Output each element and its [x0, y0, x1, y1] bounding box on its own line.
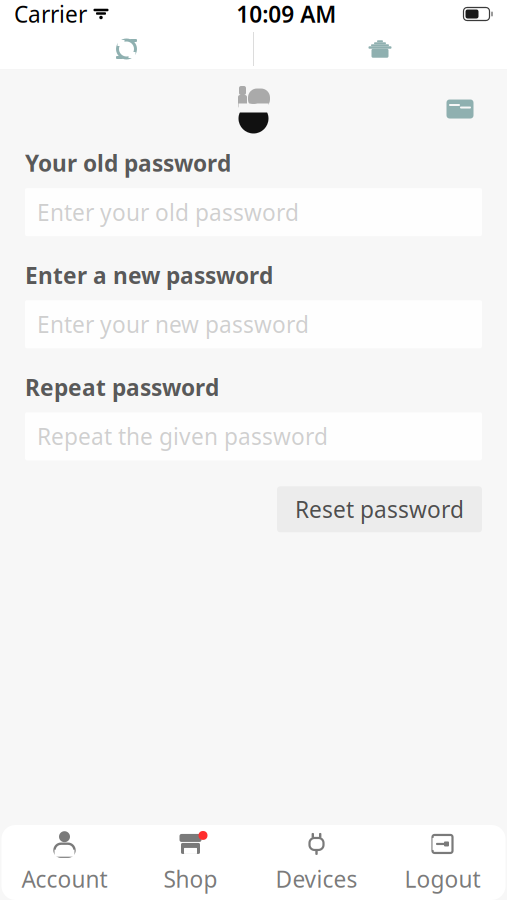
button[interactable]: Reset password [277, 486, 482, 532]
staticText: Devices [275, 864, 357, 894]
button[interactable]: Enter your new password [0, 300, 507, 348]
button[interactable]: Enter your old password [0, 188, 507, 236]
staticText: Reset password [295, 494, 464, 524]
button[interactable]: Account [1, 825, 127, 900]
staticText: Logout [404, 864, 480, 894]
button[interactable]: Home [253, 28, 507, 70]
button[interactable]: Messages [433, 82, 487, 136]
staticText: Repeat the given password [37, 421, 328, 451]
staticText: Carrier [14, 0, 87, 29]
button[interactable]: Repeat the given password [0, 412, 507, 460]
button[interactable]: Devices [253, 825, 379, 900]
staticText: Account [21, 864, 107, 894]
button[interactable]: Logout [379, 825, 505, 900]
staticText: Enter a new password [25, 260, 273, 290]
staticText: Shop [163, 864, 217, 894]
staticText: Repeat password [25, 372, 219, 402]
staticText: Enter your new password [37, 309, 309, 339]
button[interactable]: Refresh [0, 28, 253, 70]
staticText: 10:09 AM [236, 0, 336, 29]
staticText: Enter your old password [37, 197, 299, 227]
staticText: Your old password [25, 148, 231, 178]
button[interactable]: Shop [127, 825, 253, 900]
